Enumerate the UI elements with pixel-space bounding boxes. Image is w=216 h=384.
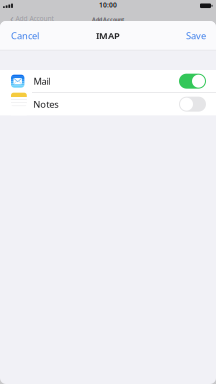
staticText: Save	[186, 30, 206, 42]
staticText: 10:00	[99, 1, 117, 9]
staticText: IMAP	[96, 30, 120, 42]
staticText: Add Account	[15, 14, 53, 23]
staticText: ‹	[10, 10, 14, 26]
staticText: Mail	[33, 75, 50, 87]
button[interactable]: Mail	[0, 70, 216, 92]
staticText: Add Account	[92, 16, 124, 23]
button[interactable]: Cancel	[11, 30, 39, 42]
button[interactable]: Save	[186, 30, 206, 42]
staticText: Cancel	[11, 30, 39, 42]
button[interactable]: Notes	[0, 93, 216, 115]
staticText: Notes	[33, 98, 58, 110]
